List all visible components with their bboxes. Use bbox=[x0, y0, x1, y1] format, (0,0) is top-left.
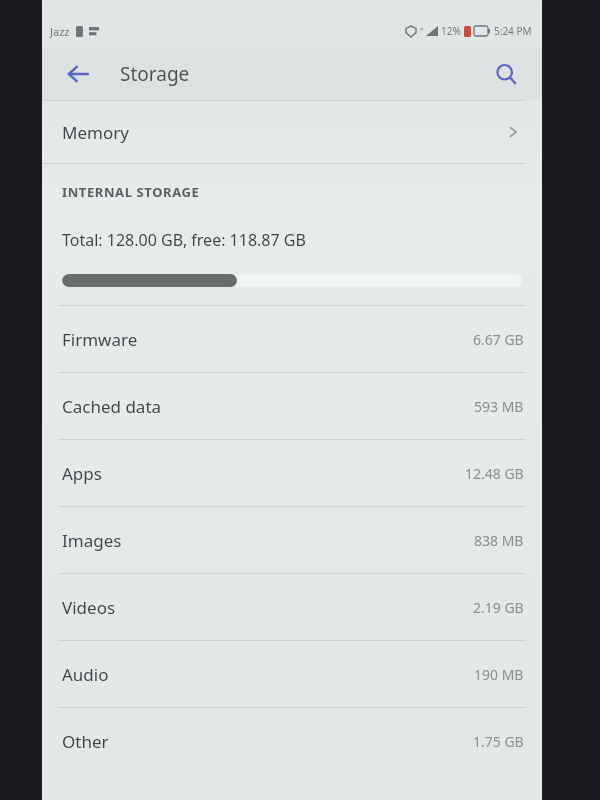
staticText: Apps bbox=[62, 462, 102, 485]
staticText: Memory bbox=[62, 121, 129, 144]
staticText: 1.75 GB bbox=[473, 732, 524, 751]
button[interactable]: Apps bbox=[42, 440, 542, 506]
staticText: Firmware bbox=[62, 328, 138, 351]
button[interactable]: Search bbox=[486, 54, 526, 94]
staticText: Jazz bbox=[50, 24, 70, 39]
button[interactable]: Videos bbox=[42, 574, 542, 640]
staticText: Images bbox=[62, 529, 122, 552]
button[interactable]: Other bbox=[42, 708, 542, 774]
button[interactable]: Back bbox=[58, 54, 98, 94]
staticText: 593 MB bbox=[474, 397, 524, 416]
button[interactable]: Firmware bbox=[42, 306, 542, 372]
staticText: 190 MB bbox=[474, 665, 524, 684]
staticText: Storage bbox=[120, 61, 190, 87]
staticText: Videos bbox=[62, 596, 116, 619]
staticText: 838 MB bbox=[474, 531, 524, 550]
staticText: 6.67 GB bbox=[473, 330, 524, 349]
button[interactable]: Images bbox=[42, 507, 542, 573]
staticText: " bbox=[420, 25, 424, 37]
staticText: Cached data bbox=[62, 395, 162, 418]
button[interactable]: Memory bbox=[42, 101, 542, 163]
staticText: Audio bbox=[62, 663, 109, 686]
button[interactable]: Audio bbox=[42, 641, 542, 707]
staticText: 5:24 PM bbox=[494, 24, 532, 38]
staticText: 12% bbox=[441, 24, 461, 38]
staticText: Other bbox=[62, 730, 109, 753]
staticText: Total: 128.00 GB, free: 118.87 GB bbox=[62, 229, 306, 251]
staticText: 2.19 GB bbox=[473, 598, 524, 617]
staticText: 12.48 GB bbox=[465, 464, 524, 483]
staticText: INTERNAL STORAGE bbox=[62, 183, 200, 201]
button[interactable]: Cached data bbox=[42, 373, 542, 439]
